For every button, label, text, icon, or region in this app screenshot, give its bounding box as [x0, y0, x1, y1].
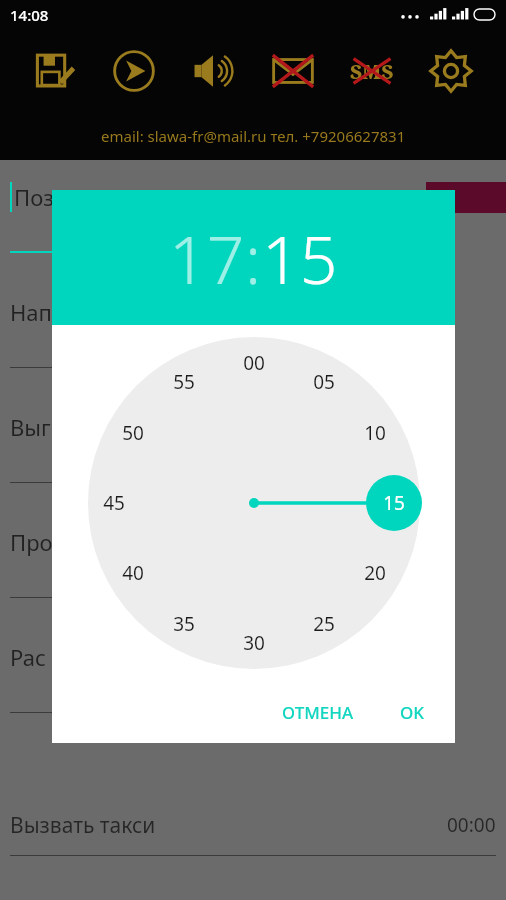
button[interactable]: Рас — [0, 620, 506, 735]
button[interactable]: Settings — [423, 43, 479, 99]
button[interactable]: OK — [388, 693, 437, 732]
button[interactable]: 40 — [113, 553, 153, 593]
staticText: 14:08 — [10, 5, 49, 25]
staticText: 10 — [364, 420, 386, 446]
button[interactable]: Save — [27, 43, 83, 99]
staticText: SMS — [350, 58, 394, 85]
button[interactable]: 00 — [234, 343, 274, 383]
staticText: : — [245, 213, 262, 303]
staticText: 20 — [364, 560, 386, 586]
staticText: Рас — [10, 642, 46, 672]
button[interactable]: Поз — [0, 160, 506, 275]
staticText: 35 — [173, 611, 195, 637]
button[interactable]: 35 — [164, 604, 204, 644]
button[interactable]: 15 — [262, 213, 338, 303]
staticText: OK — [400, 701, 425, 724]
button[interactable]: SMS disabled — [344, 43, 400, 99]
button[interactable]: Email disabled — [265, 43, 321, 99]
button[interactable]: 20 — [355, 553, 395, 593]
staticText: Нап — [10, 297, 52, 327]
button[interactable]: 45 — [94, 483, 134, 523]
button[interactable]: Play — [106, 43, 162, 99]
button[interactable]: 05 — [304, 362, 344, 402]
staticText: Про — [10, 527, 53, 557]
staticText: email: slawa-fr@mail.ru тел. +7920662783… — [101, 126, 406, 146]
staticText: 00:00 — [447, 812, 496, 838]
button[interactable]: 15 — [374, 483, 414, 523]
staticText: 15 — [383, 490, 405, 516]
button[interactable]: Про — [0, 505, 506, 620]
staticText: 55 — [173, 369, 195, 395]
button[interactable]: 17 — [169, 213, 245, 303]
button[interactable]: Вызвать такси — [0, 795, 506, 855]
staticText: 30 — [243, 630, 265, 656]
button[interactable]: 10 — [355, 413, 395, 453]
button[interactable]: ОТМЕНА — [270, 693, 366, 732]
button[interactable]: 55 — [164, 362, 204, 402]
button[interactable]: Выг — [0, 390, 506, 505]
button[interactable]: 50 — [113, 413, 153, 453]
button[interactable]: 30 — [234, 623, 274, 663]
staticText: 45 — [103, 490, 125, 516]
staticText: 40 — [122, 560, 144, 586]
button[interactable]: 25 — [304, 604, 344, 644]
staticText: 25 — [313, 611, 335, 637]
staticText: ОТМЕНА — [282, 701, 354, 724]
button[interactable]: Sound — [185, 43, 241, 99]
staticText: Поз — [14, 182, 54, 212]
staticText: 50 — [122, 420, 144, 446]
staticText: Выг — [10, 412, 51, 442]
staticText: 05 — [313, 369, 335, 395]
button[interactable]: Нап — [0, 275, 506, 390]
staticText: 00 — [243, 350, 265, 376]
staticText: Вызвать такси — [10, 811, 156, 840]
